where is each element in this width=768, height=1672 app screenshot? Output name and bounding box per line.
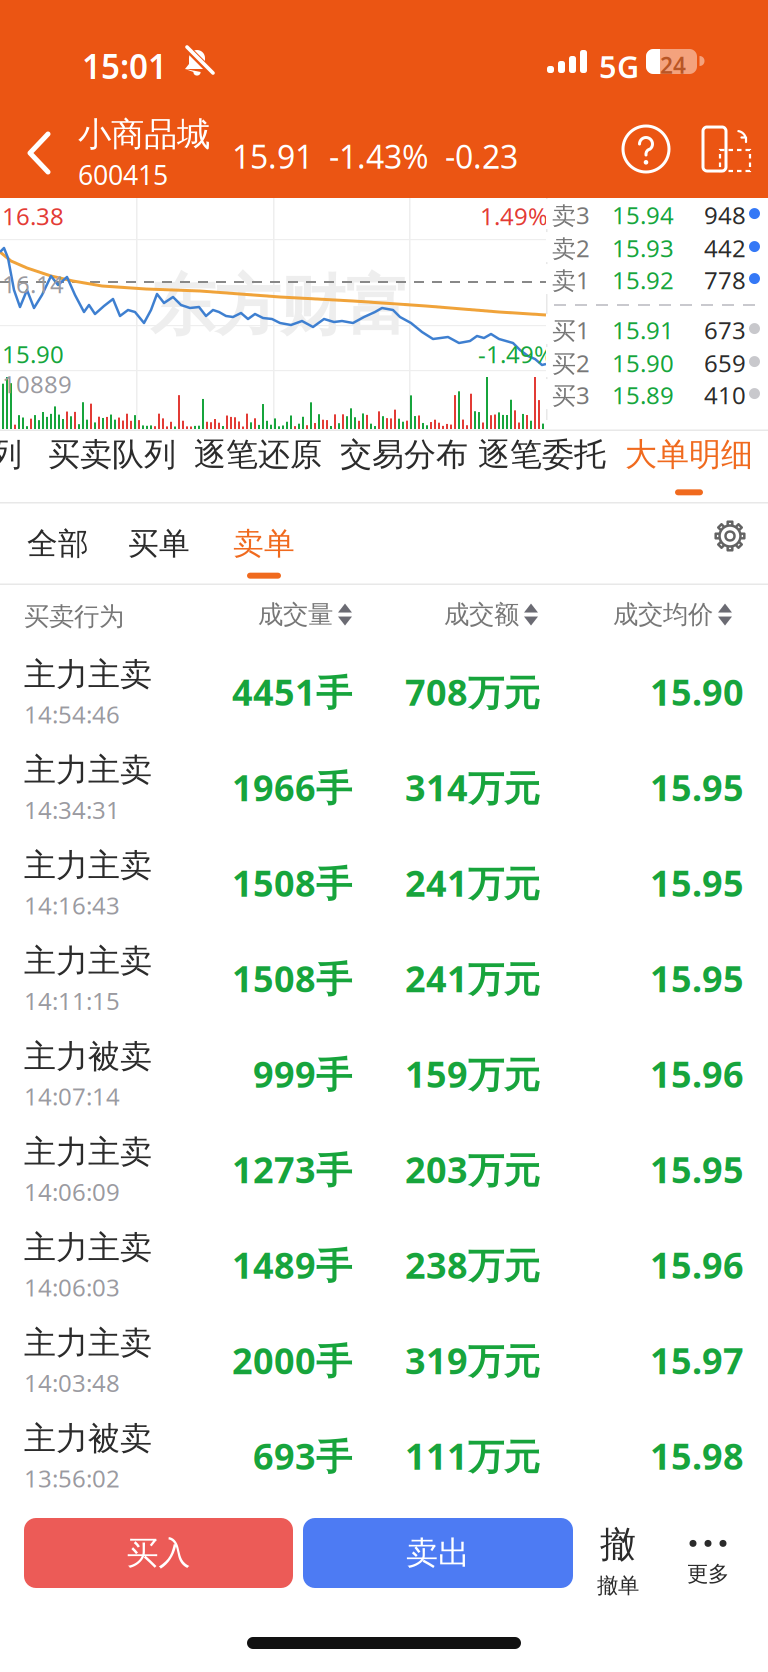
staticText: 708万元 <box>405 668 540 716</box>
button[interactable]: 买入 <box>24 1518 293 1588</box>
staticText: 卖单 <box>233 525 295 563</box>
staticText: 主力主卖 <box>24 846 152 885</box>
staticText: 15.90 <box>650 668 744 716</box>
button[interactable]: Settings <box>714 520 746 552</box>
staticText: -1.49% <box>478 338 554 370</box>
staticText: 东方财富 <box>150 266 410 346</box>
staticText: 24 <box>660 50 686 80</box>
staticText: 319万元 <box>405 1336 540 1384</box>
staticText: 778 <box>704 264 746 296</box>
staticText: 逐笔还原 <box>194 435 322 474</box>
staticText: 买卖队列 <box>48 435 176 474</box>
staticText: 659 <box>704 347 746 379</box>
staticText: 442 <box>704 232 746 264</box>
staticText: 15.93 <box>612 232 674 264</box>
staticText: 15.89 <box>612 379 674 411</box>
staticText: 241万元 <box>405 859 540 907</box>
staticText: 10889 <box>2 368 72 400</box>
staticText: 13:56:02 <box>24 1462 120 1494</box>
button[interactable]: 成交额 <box>358 599 538 630</box>
button[interactable]: 全部 <box>27 525 89 563</box>
staticText: 159万元 <box>405 1050 540 1098</box>
button[interactable]: 交易分布 <box>340 435 468 474</box>
staticText: 交易分布 <box>340 435 468 474</box>
staticText: 14:54:46 <box>24 698 120 730</box>
staticText: 14:06:09 <box>24 1176 120 1208</box>
staticText: 1966手 <box>232 763 352 811</box>
staticText: 买2 <box>552 347 590 379</box>
button[interactable]: 买卖队列 <box>48 435 176 474</box>
button[interactable]: 大单明细 <box>625 435 753 495</box>
staticText: 主力主卖 <box>24 1132 152 1172</box>
button[interactable]: Landscape chart <box>698 100 758 198</box>
staticText: 1508手 <box>232 954 352 1002</box>
staticText: 1489手 <box>232 1241 352 1289</box>
staticText: 15.95 <box>650 954 744 1002</box>
staticText: 14:16:43 <box>24 889 120 921</box>
staticText: 14:06:03 <box>24 1271 120 1303</box>
button[interactable]: 买单 <box>128 525 190 563</box>
staticText: 14:11:15 <box>24 985 120 1017</box>
staticText: 15.95 <box>650 859 744 907</box>
staticText: 693手 <box>253 1432 352 1480</box>
staticText: 14:34:31 <box>24 794 120 826</box>
staticText: 主力主卖 <box>24 750 152 790</box>
staticText: 15.96 <box>650 1050 744 1098</box>
staticText: 买3 <box>552 379 590 411</box>
button[interactable]: 逐笔委托 <box>478 435 606 474</box>
staticText: 小商品城 <box>78 114 210 155</box>
staticText: 成交均价 <box>613 599 713 630</box>
staticText: 成交额 <box>444 599 519 630</box>
staticText: 主力主卖 <box>24 941 152 981</box>
staticText: 5G <box>599 46 639 87</box>
staticText: 15:01 <box>82 44 167 88</box>
button[interactable]: Help <box>618 100 768 198</box>
staticText: 买卖行为 <box>24 601 124 632</box>
button[interactable]: 逐笔还原 <box>194 435 322 474</box>
button[interactable]: 成交均价 <box>532 599 732 630</box>
staticText: 买入 <box>126 1533 190 1573</box>
staticText: 999手 <box>253 1050 352 1098</box>
staticText: 238万元 <box>405 1241 540 1289</box>
staticText: 15.96 <box>650 1241 744 1289</box>
staticText: 203万元 <box>405 1145 540 1193</box>
staticText: 15.94 <box>612 199 674 231</box>
staticText: 卖3 <box>552 199 590 231</box>
staticText: 15.97 <box>650 1336 744 1384</box>
staticText: 撤 <box>600 1522 636 1566</box>
staticText: 卖出 <box>406 1533 470 1573</box>
staticText: 15.90 <box>612 347 674 379</box>
staticText: 16.38 <box>2 200 64 232</box>
staticText: 卖1 <box>552 264 590 296</box>
staticText: 314万元 <box>405 763 540 811</box>
button[interactable]: 卖单 <box>233 525 295 579</box>
staticText: 大单明细 <box>625 435 753 474</box>
staticText: 241万元 <box>405 954 540 1002</box>
staticText: 主力主卖 <box>24 1228 152 1267</box>
staticText: 主力被卖 <box>24 1419 152 1458</box>
staticText: 15.95 <box>650 1145 744 1193</box>
staticText: 15.90 <box>2 338 64 370</box>
button[interactable]: 卖出 <box>303 1518 573 1588</box>
staticText: 买单 <box>128 525 190 563</box>
button[interactable]: 成交量 <box>172 599 352 630</box>
button[interactable]: Back <box>0 100 62 198</box>
staticText: 673 <box>704 314 746 346</box>
staticText: 1273手 <box>232 1145 352 1193</box>
staticText: 卖2 <box>552 232 590 264</box>
staticText: 111万元 <box>405 1432 540 1480</box>
staticText: 1.49% <box>480 200 548 232</box>
staticText: 主力主卖 <box>24 655 152 694</box>
staticText: 2000手 <box>232 1336 352 1384</box>
button[interactable]: 撤 <box>578 1517 658 1603</box>
staticText: 15.95 <box>650 763 744 811</box>
staticText: 15.91 <box>612 314 674 346</box>
staticText: 成交量 <box>258 599 333 630</box>
button[interactable]: 列 <box>0 435 22 474</box>
staticText: 列 <box>0 435 22 474</box>
staticText: 全部 <box>27 525 89 563</box>
staticText: 948 <box>704 199 746 231</box>
staticText: 1508手 <box>232 859 352 907</box>
staticText: 主力被卖 <box>24 1037 152 1076</box>
button[interactable]: More <box>668 1523 748 1603</box>
